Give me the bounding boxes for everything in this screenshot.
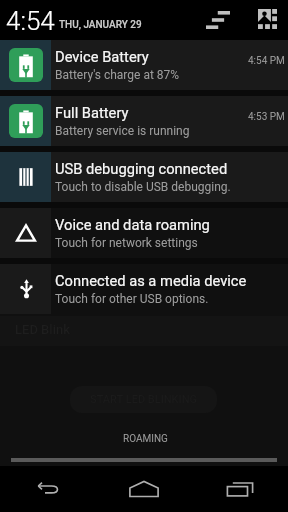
button[interactable]: Back xyxy=(0,466,96,512)
staticText: 4:54 PM xyxy=(248,55,285,67)
staticText: 4:54 xyxy=(6,6,55,36)
button[interactable]: Voice and data roaming xyxy=(0,208,288,258)
staticText: Touch to disable USB debugging. xyxy=(55,180,231,194)
button[interactable]: Connected as a media device xyxy=(0,264,288,314)
button[interactable]: Quick settings xyxy=(252,4,284,36)
staticText: ROAMING xyxy=(123,433,168,445)
staticText: Voice and data roaming xyxy=(55,216,210,233)
staticText: LED Blink xyxy=(15,322,70,337)
staticText: Device Battery xyxy=(55,48,149,65)
button[interactable]: Recent apps xyxy=(192,466,288,512)
staticText: USB debugging connected xyxy=(55,160,228,177)
button[interactable]: Device Battery xyxy=(0,40,288,90)
button[interactable]: Home xyxy=(96,466,192,512)
button[interactable]: USB debugging connected xyxy=(0,152,288,202)
staticText: Touch for network settings xyxy=(55,236,198,250)
staticText: 4:53 PM xyxy=(248,111,285,123)
staticText: THU, JANUARY 29 xyxy=(59,19,142,31)
staticText: Touch for other USB options. xyxy=(55,292,209,306)
staticText: Connected as a media device xyxy=(55,272,247,289)
button[interactable]: Full Battery xyxy=(0,96,288,146)
staticText: Battery service is running xyxy=(55,124,190,138)
staticText: Full Battery xyxy=(55,104,129,121)
button[interactable]: Clear all notifications xyxy=(198,5,230,37)
staticText: Battery's charge at 87% xyxy=(55,68,180,82)
